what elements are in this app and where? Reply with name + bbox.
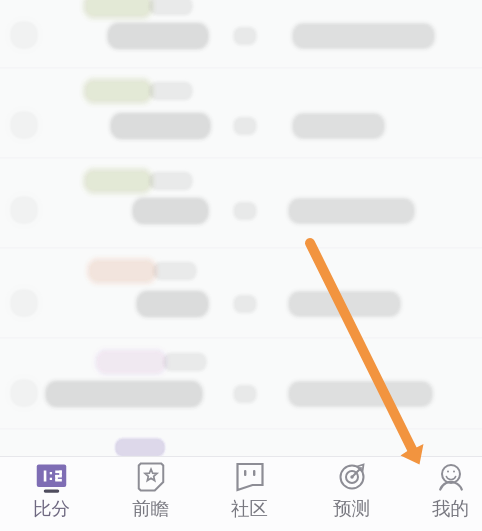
staticText: 前瞻 <box>132 497 169 520</box>
staticText: 预测 <box>333 497 370 520</box>
button[interactable]: 比分 <box>2 457 101 520</box>
button[interactable]: 前瞻 <box>101 457 200 520</box>
button[interactable]: 我的 <box>401 457 482 520</box>
staticText: 比分 <box>33 497 70 520</box>
button[interactable]: 预测 <box>302 457 401 520</box>
button[interactable]: 社区 <box>200 457 299 520</box>
staticText: 社区 <box>231 497 268 520</box>
staticText: 我的 <box>432 497 469 520</box>
other: Pointer arrow <box>0 0 482 531</box>
